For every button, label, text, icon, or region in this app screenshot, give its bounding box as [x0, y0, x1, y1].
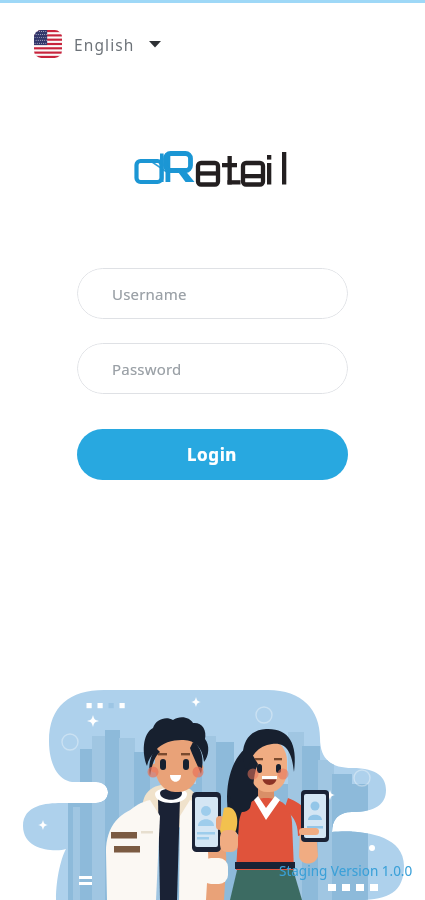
button[interactable]: Username	[77, 268, 348, 319]
button[interactable]: English	[34, 30, 161, 58]
staticText: Login	[187, 443, 238, 466]
staticText: Username	[112, 284, 187, 304]
button[interactable]: Password	[77, 343, 348, 394]
staticText: Password	[112, 359, 182, 379]
staticText: Staging Version 1.0.0	[279, 862, 413, 880]
button[interactable]: Login	[77, 429, 348, 480]
staticText: English	[74, 34, 135, 55]
